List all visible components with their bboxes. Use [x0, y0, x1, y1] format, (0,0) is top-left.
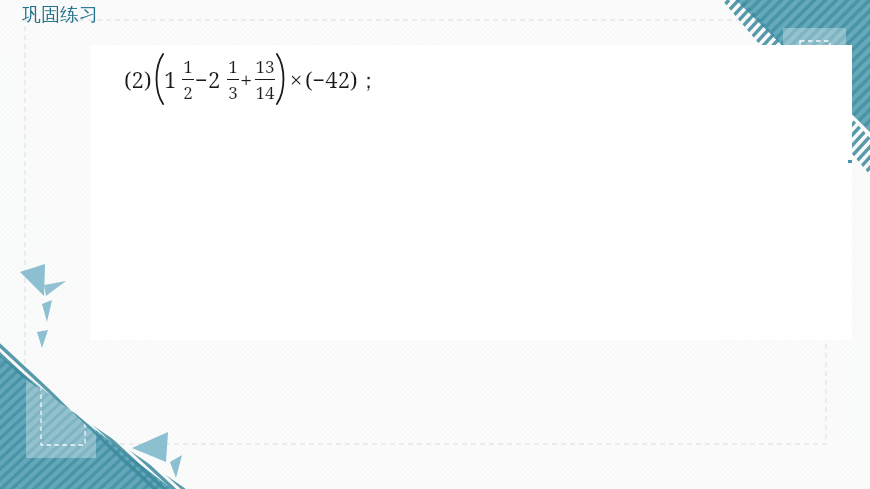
staticText: 3: [228, 81, 238, 104]
staticText: 1: [164, 64, 177, 94]
staticText: (2): [124, 64, 152, 94]
staticText: 巩固练习: [22, 3, 98, 27]
staticText: 1: [228, 55, 238, 78]
staticText: −: [195, 64, 208, 94]
staticText: +: [240, 64, 253, 94]
staticText: ×: [290, 64, 303, 94]
staticText: (−42)；: [305, 64, 380, 94]
staticText: 2: [183, 81, 193, 104]
staticText: 14: [255, 81, 275, 104]
staticText: 13: [255, 55, 275, 78]
staticText: 1: [183, 55, 193, 78]
staticText: 2: [208, 64, 221, 94]
